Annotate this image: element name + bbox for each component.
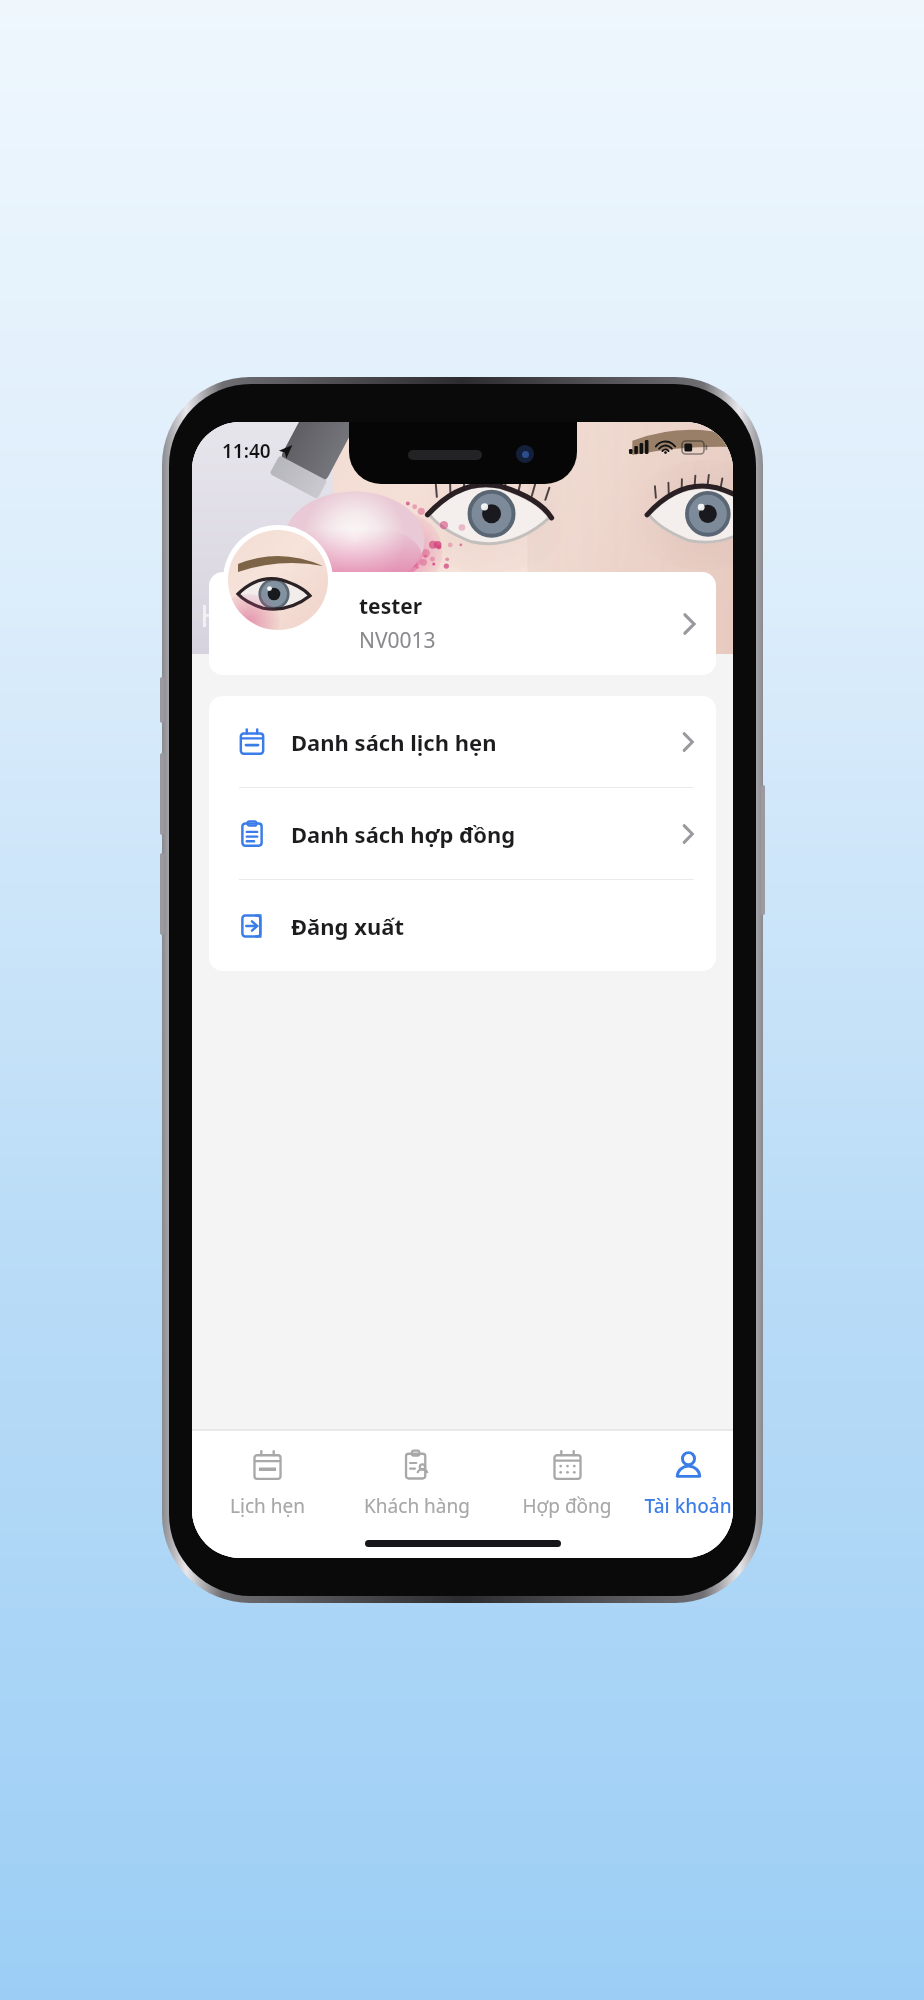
staticText: Khách hàng bbox=[364, 1493, 470, 1519]
staticText: How not to be a cloud bbox=[200, 594, 519, 636]
staticText: NV0013 bbox=[359, 626, 436, 655]
button[interactable]: Tài khoản bbox=[642, 1430, 733, 1534]
button[interactable]: Đăng xuất bbox=[209, 880, 716, 971]
other: Khách hàng bbox=[402, 1450, 433, 1481]
staticText: Hợp đồng bbox=[522, 1493, 612, 1519]
button[interactable]: Hợp đồng bbox=[492, 1430, 642, 1534]
other: Hợp đồng bbox=[552, 1450, 583, 1481]
staticText: Đăng xuất bbox=[291, 911, 694, 941]
button[interactable]: Danh sách hợp đồng bbox=[209, 788, 716, 879]
button[interactable]: Danh sách lịch hẹn bbox=[209, 696, 716, 787]
staticText: 11:40 bbox=[222, 438, 271, 464]
button[interactable]: Khách hàng bbox=[342, 1430, 492, 1534]
staticText: Danh sách lịch hẹn bbox=[291, 727, 682, 757]
button[interactable]: Lịch hẹn bbox=[192, 1430, 342, 1534]
other: Lịch hẹn bbox=[252, 1450, 283, 1481]
other: Tài khoản bbox=[673, 1450, 704, 1481]
staticText: Danh sách hợp đồng bbox=[291, 819, 682, 849]
staticText: tester bbox=[359, 592, 423, 621]
staticText: Tài khoản bbox=[644, 1493, 732, 1519]
button[interactable]: tester bbox=[209, 572, 716, 675]
staticText: Lịch hẹn bbox=[230, 1493, 305, 1519]
